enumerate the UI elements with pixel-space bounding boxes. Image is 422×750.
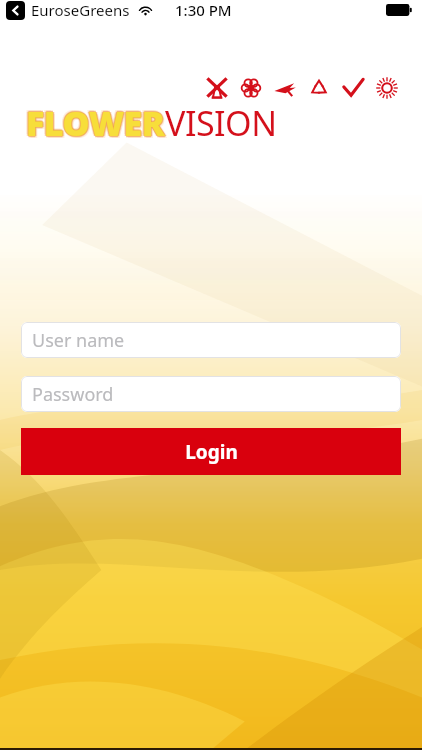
staticText: FLOWER <box>27 100 166 146</box>
staticText: FLOWER <box>26 99 165 145</box>
staticText: 1:30 PM <box>175 0 232 20</box>
staticText: FLOWER <box>26 99 165 145</box>
staticText: FLOWER <box>24 100 163 146</box>
staticText: FLOWER <box>27 101 166 147</box>
staticText: FLOWER <box>26 100 165 146</box>
staticText: FLOWER <box>24 98 163 144</box>
staticText: FLOWER <box>25 99 164 145</box>
staticText: Login <box>185 439 238 465</box>
staticText: FLOWER <box>25 100 164 146</box>
staticText: FLOWER <box>26 101 165 147</box>
staticText: FLOWER <box>26 100 165 146</box>
staticText: FLOWER <box>27 100 166 146</box>
button[interactable]: Password <box>21 376 401 412</box>
staticText: FLOWER <box>28 102 167 148</box>
staticText: User name <box>32 328 125 353</box>
staticText: FLOWER <box>25 100 164 146</box>
staticText: FLOWER <box>26 100 165 146</box>
staticText: FLOWER <box>26 101 165 147</box>
button[interactable]: Back <box>6 1 25 20</box>
staticText: FLOWER <box>26 102 165 148</box>
staticText: Password <box>32 382 114 407</box>
staticText: FLOWER <box>26 98 165 144</box>
staticText: VISION <box>165 100 277 146</box>
button[interactable]: Login <box>21 428 401 475</box>
button[interactable]: User name <box>21 322 401 358</box>
staticText: EuroseGreens <box>31 0 130 20</box>
staticText: FLOWER <box>28 100 167 146</box>
